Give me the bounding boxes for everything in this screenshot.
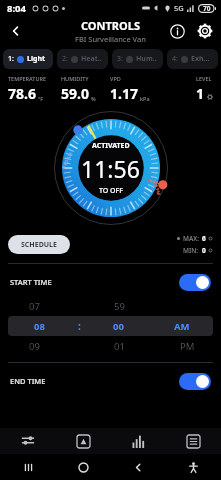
button[interactable]: Back bbox=[111, 454, 166, 480]
staticText: 00 bbox=[113, 320, 124, 333]
staticText: Hum... bbox=[136, 54, 158, 64]
button[interactable]: 4: bbox=[167, 49, 218, 69]
button[interactable]: Info bbox=[167, 21, 187, 41]
staticText: PM bbox=[180, 340, 195, 353]
button[interactable]: 2: bbox=[57, 49, 108, 69]
staticText: Exh... bbox=[191, 54, 210, 64]
staticText: TEMPERATURE bbox=[8, 75, 47, 82]
staticText: 70 bbox=[203, 4, 211, 13]
button[interactable]: END TIME bbox=[10, 371, 211, 391]
staticText: 3: bbox=[117, 54, 123, 64]
button[interactable]: 3: bbox=[112, 49, 163, 69]
staticText: HUMIDITY bbox=[61, 75, 89, 82]
button[interactable]: Recents bbox=[0, 454, 56, 480]
staticText: Light bbox=[27, 54, 46, 64]
button[interactable]: Accessibility bbox=[166, 454, 221, 480]
button[interactable]: Home bbox=[56, 454, 111, 480]
staticText: FBI Surveillance Van bbox=[75, 34, 146, 44]
staticText: 1: bbox=[8, 54, 14, 64]
staticText: 4: bbox=[172, 54, 178, 64]
button[interactable]: Settings bbox=[195, 21, 215, 41]
staticText: 5G bbox=[174, 3, 184, 13]
staticText: 11:56 bbox=[81, 153, 140, 184]
staticText: 2: bbox=[62, 54, 68, 64]
staticText: START TIME bbox=[10, 277, 52, 287]
staticText: 1.17 bbox=[110, 84, 138, 103]
staticText: Heat... bbox=[81, 54, 103, 64]
staticText: 09 bbox=[29, 340, 40, 353]
staticText: CONTROLS bbox=[81, 18, 140, 33]
staticText: 59 bbox=[114, 300, 125, 313]
staticText: AM bbox=[174, 320, 190, 333]
staticText: MAX: bbox=[183, 234, 199, 243]
staticText: 0 bbox=[202, 246, 206, 255]
button[interactable]: 08 bbox=[8, 316, 213, 336]
staticText: 8:00 AM bbox=[60, 151, 74, 169]
staticText: END TIME bbox=[10, 376, 46, 386]
button[interactable]: Controls bbox=[0, 428, 56, 454]
button[interactable]: Back bbox=[4, 19, 28, 43]
staticText: % bbox=[91, 95, 96, 102]
button[interactable]: Devices bbox=[56, 428, 111, 454]
button[interactable]: START TIME bbox=[10, 272, 211, 292]
staticText: MIN: bbox=[183, 246, 199, 255]
staticText: 7:59 PM bbox=[151, 177, 163, 196]
staticText: °F bbox=[38, 95, 44, 102]
staticText: TO OFF bbox=[99, 186, 123, 196]
staticText: 08 bbox=[34, 320, 45, 333]
button[interactable]: SCHEDULE bbox=[8, 235, 70, 254]
staticText: kPa bbox=[140, 95, 150, 102]
staticText: : bbox=[78, 319, 81, 333]
staticText: 78.6 bbox=[8, 84, 36, 103]
staticText: 01 bbox=[114, 340, 125, 353]
staticText: SCHEDULE bbox=[21, 240, 57, 250]
staticText: 6 bbox=[202, 234, 206, 243]
staticText: VPD bbox=[110, 75, 121, 82]
staticText: 8:04 bbox=[7, 2, 26, 15]
staticText: 07 bbox=[29, 300, 40, 313]
button[interactable]: Log bbox=[166, 428, 221, 454]
staticText: 1 bbox=[196, 84, 205, 103]
button[interactable]: Stats bbox=[111, 428, 166, 454]
staticText: ACTIVATED bbox=[92, 141, 130, 151]
button[interactable]: 1: bbox=[3, 49, 53, 69]
staticText: LEVEL bbox=[196, 75, 212, 82]
staticText: 59.0 bbox=[61, 84, 89, 103]
